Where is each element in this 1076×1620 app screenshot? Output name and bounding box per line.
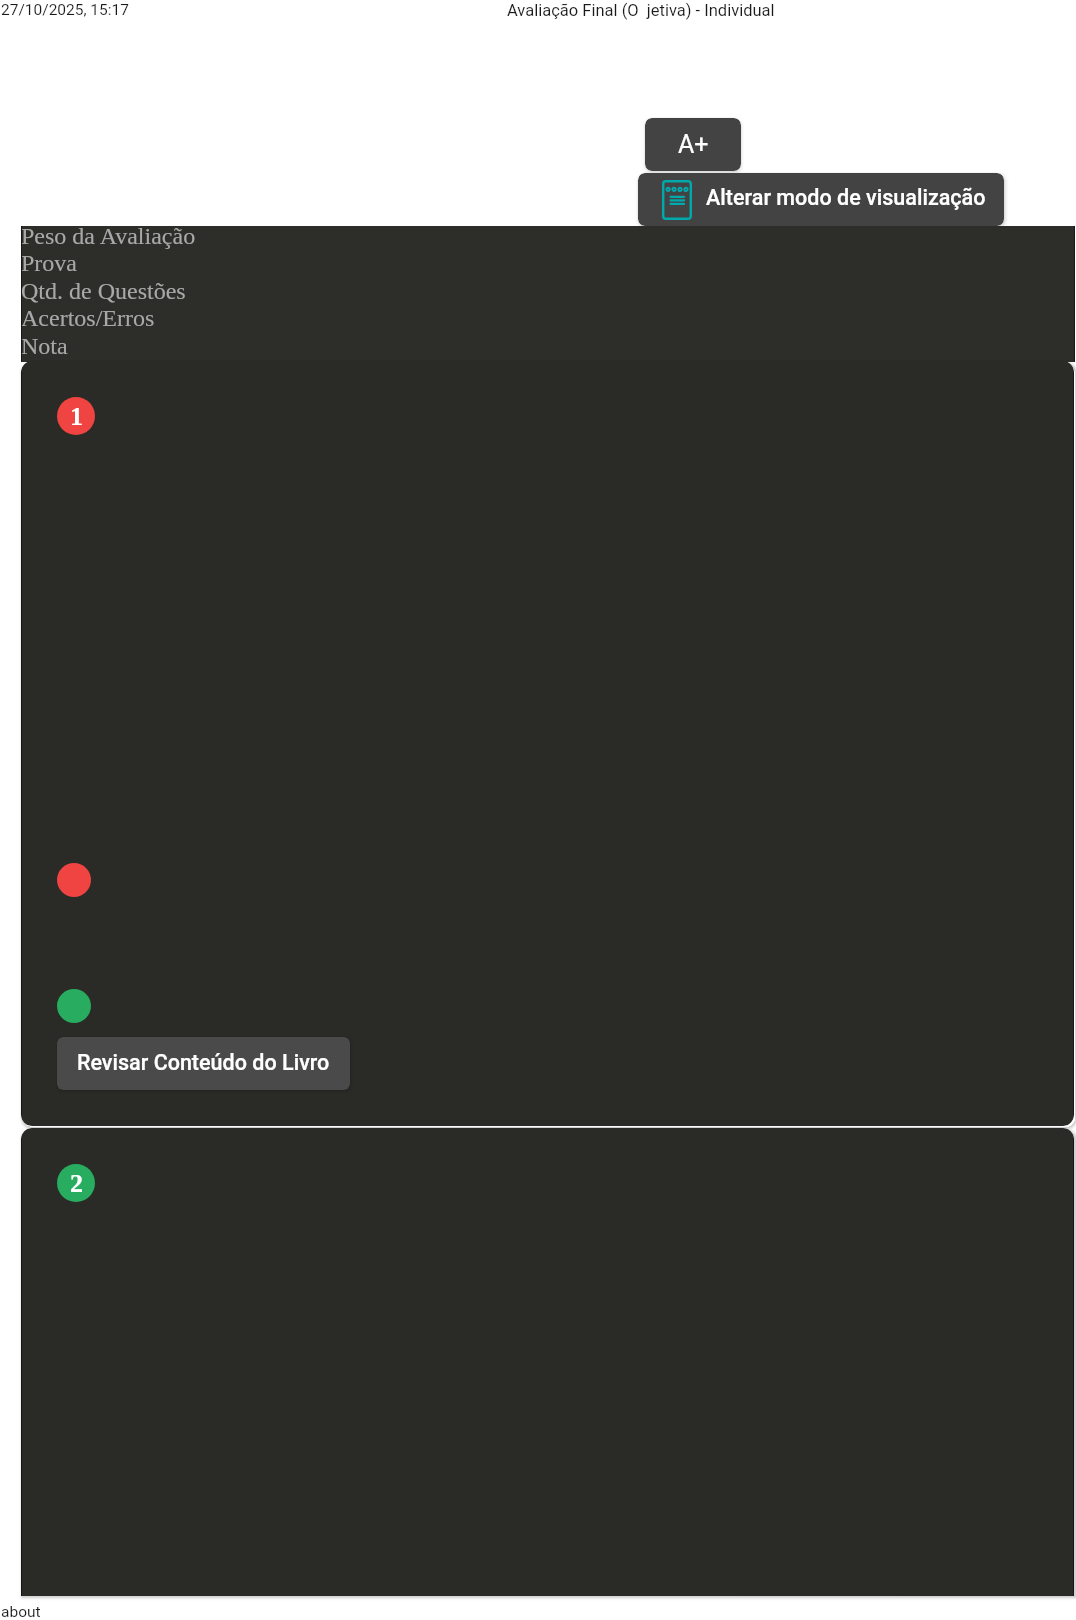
staticText: Acertos/Erros	[21, 305, 155, 332]
other: Alterar modo de visualização	[662, 180, 692, 220]
staticText: about	[1, 1603, 41, 1620]
staticText: Revisar Conteúdo do Livro	[77, 1050, 330, 1075]
staticText: 1	[70, 402, 83, 431]
staticText: 2	[70, 1169, 83, 1198]
button[interactable]: Revisar Conteúdo do Livro	[57, 1037, 350, 1090]
button[interactable]: Alterar modo de visualização	[638, 173, 1004, 226]
staticText: Nota	[21, 333, 68, 360]
staticText: Peso da Avaliação	[21, 223, 196, 250]
staticText: Avaliação Final (O jetiva) - Individual	[507, 1, 775, 20]
button[interactable]: A+	[645, 118, 741, 171]
staticText: 27/10/2025, 15:17	[1, 1, 129, 19]
staticText: Prova	[21, 250, 77, 277]
staticText: A+	[678, 130, 709, 159]
staticText: Alterar modo de visualização	[706, 185, 986, 210]
staticText: Qtd. de Questões	[21, 278, 186, 305]
